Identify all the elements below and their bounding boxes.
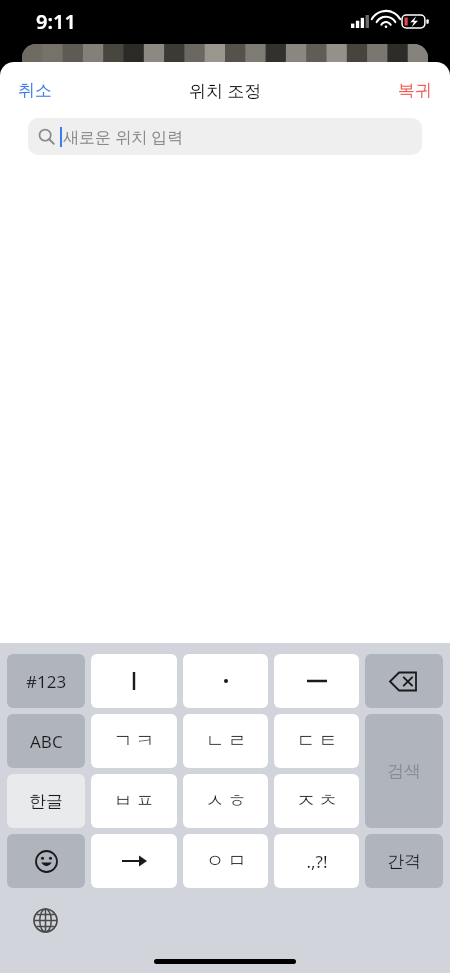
button[interactable]: 취소 bbox=[0, 72, 70, 109]
staticText: ㅂㅍ bbox=[112, 789, 156, 813]
staticText: 한글 bbox=[29, 791, 63, 812]
button[interactable]: 간격 bbox=[365, 834, 443, 888]
button[interactable]: ㅂㅍ bbox=[91, 774, 177, 828]
button[interactable]: 복귀 bbox=[380, 72, 450, 109]
button[interactable]: .,?! bbox=[274, 834, 359, 888]
staticText: 복귀 bbox=[398, 80, 432, 101]
button[interactable]: 검색 bbox=[365, 714, 443, 828]
button[interactable]: 한글 bbox=[7, 774, 85, 828]
staticText: ㄷㅌ bbox=[295, 729, 339, 753]
button[interactable]: Switch keyboard language bbox=[28, 903, 62, 937]
button[interactable]: Emoji bbox=[7, 834, 85, 888]
button[interactable] bbox=[183, 654, 268, 708]
button[interactable]: ㅇㅁ bbox=[183, 834, 268, 888]
staticText: 간격 bbox=[387, 851, 421, 872]
staticText: 새로운 위치 입력 bbox=[63, 126, 184, 148]
button[interactable]: ㅅㅎ bbox=[183, 774, 268, 828]
staticText: 위치 조정 bbox=[189, 79, 262, 102]
staticText: 취소 bbox=[18, 80, 52, 101]
button[interactable]: ABC bbox=[7, 714, 85, 768]
button[interactable]: ㅈㅊ bbox=[274, 774, 359, 828]
button[interactable]: ㄷㅌ bbox=[274, 714, 359, 768]
button[interactable]: ㄴㄹ bbox=[183, 714, 268, 768]
staticText: ㄱㅋ bbox=[112, 729, 156, 753]
button[interactable] bbox=[91, 834, 177, 888]
staticText: #123 bbox=[26, 670, 67, 693]
staticText: ㅇㅁ bbox=[204, 849, 248, 873]
staticText: ABC bbox=[30, 730, 63, 753]
button[interactable]: ㄱㅋ bbox=[91, 714, 177, 768]
button[interactable] bbox=[91, 654, 177, 708]
button[interactable]: Backspace bbox=[365, 654, 443, 708]
staticText: 9:11 bbox=[36, 8, 76, 35]
staticText: ㅈㅊ bbox=[295, 789, 339, 813]
button[interactable]: 새로운 위치 입력 bbox=[28, 118, 422, 155]
staticText: 검색 bbox=[387, 761, 421, 782]
staticText: .,?! bbox=[306, 850, 328, 873]
staticText: ㅅㅎ bbox=[204, 789, 248, 813]
button[interactable] bbox=[274, 654, 359, 708]
staticText: ㄴㄹ bbox=[204, 729, 248, 753]
button[interactable]: #123 bbox=[7, 654, 85, 708]
